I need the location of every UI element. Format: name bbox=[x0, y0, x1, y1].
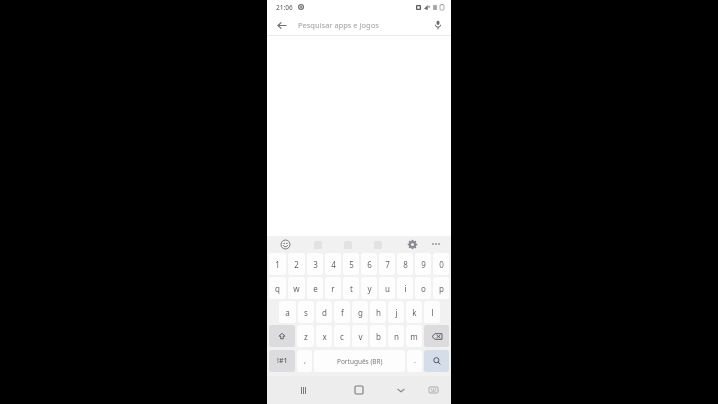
button[interactable]: Toolbar item 2 bbox=[341, 238, 354, 251]
button[interactable]: p bbox=[433, 277, 449, 299]
button[interactable]: s bbox=[298, 301, 314, 323]
button[interactable]: Backspace bbox=[424, 325, 449, 347]
button[interactable]: Voice search bbox=[429, 16, 447, 34]
button[interactable]: 4 bbox=[325, 253, 341, 275]
button[interactable]: 6 bbox=[361, 253, 377, 275]
button[interactable]: d bbox=[316, 301, 332, 323]
button[interactable]: k bbox=[406, 301, 422, 323]
button[interactable]: r bbox=[325, 277, 341, 299]
staticText: v bbox=[358, 331, 363, 342]
button[interactable]: 7 bbox=[379, 253, 395, 275]
button[interactable]: y bbox=[361, 277, 377, 299]
button[interactable]: e bbox=[307, 277, 323, 299]
button[interactable]: o bbox=[415, 277, 431, 299]
button[interactable]: v bbox=[352, 325, 368, 347]
button[interactable]: , bbox=[297, 350, 312, 372]
button[interactable]: Home bbox=[351, 382, 367, 398]
staticText: 8 bbox=[403, 259, 408, 270]
staticText: r bbox=[331, 283, 335, 294]
button[interactable]: Shift bbox=[269, 325, 295, 347]
staticText: q bbox=[275, 283, 280, 294]
staticText: u bbox=[385, 283, 390, 294]
button[interactable]: n bbox=[388, 325, 404, 347]
staticText: b bbox=[376, 331, 381, 342]
button[interactable]: Emoji bbox=[278, 237, 292, 251]
button[interactable]: Pesquisar apps e jogos bbox=[298, 15, 423, 35]
staticText: n bbox=[394, 331, 399, 342]
staticText: f bbox=[341, 307, 344, 318]
button[interactable]: l bbox=[424, 301, 440, 323]
staticText: , bbox=[304, 356, 306, 366]
button[interactable]: t bbox=[343, 277, 359, 299]
staticText: 0 bbox=[439, 259, 444, 270]
staticText: 6 bbox=[367, 259, 372, 270]
button[interactable]: Change keyboard bbox=[425, 382, 441, 398]
button[interactable]: h bbox=[370, 301, 386, 323]
staticText: 5 bbox=[349, 259, 354, 270]
button[interactable]: Hide keyboard bbox=[393, 382, 409, 398]
button[interactable]: b bbox=[370, 325, 386, 347]
button[interactable]: 3 bbox=[307, 253, 323, 275]
staticText: h bbox=[376, 307, 381, 318]
staticText: l bbox=[431, 307, 434, 318]
staticText: 3 bbox=[313, 259, 318, 270]
staticText: 21:06 bbox=[276, 3, 293, 12]
button[interactable]: Search bbox=[424, 350, 449, 372]
button[interactable]: 8 bbox=[397, 253, 413, 275]
button[interactable]: g bbox=[352, 301, 368, 323]
button[interactable]: Recent apps bbox=[295, 382, 311, 398]
staticText: g bbox=[358, 307, 363, 318]
button[interactable]: 0 bbox=[433, 253, 449, 275]
button[interactable]: 9 bbox=[415, 253, 431, 275]
staticText: m bbox=[410, 331, 418, 342]
button[interactable]: f bbox=[334, 301, 350, 323]
staticText: o bbox=[421, 283, 426, 294]
button[interactable]: !#1 bbox=[269, 350, 295, 372]
staticText: Português (BR) bbox=[337, 357, 383, 366]
button[interactable]: w bbox=[288, 277, 305, 299]
staticText: s bbox=[304, 307, 308, 318]
button[interactable]: u bbox=[379, 277, 395, 299]
button[interactable]: 1 bbox=[269, 253, 286, 275]
button[interactable]: i bbox=[397, 277, 413, 299]
staticText: x bbox=[322, 331, 327, 342]
button[interactable]: j bbox=[388, 301, 404, 323]
button[interactable]: Keyboard settings bbox=[405, 237, 419, 251]
staticText: d bbox=[322, 307, 327, 318]
button[interactable]: x bbox=[316, 325, 332, 347]
staticText: 7 bbox=[385, 259, 390, 270]
staticText: 4 bbox=[331, 259, 336, 270]
button[interactable]: z bbox=[297, 325, 314, 347]
button[interactable]: . bbox=[407, 350, 422, 372]
staticText: j bbox=[395, 307, 398, 318]
button[interactable]: More options bbox=[429, 237, 443, 251]
button[interactable]: Back bbox=[272, 16, 290, 34]
staticText: !#1 bbox=[277, 356, 288, 366]
button[interactable]: c bbox=[334, 325, 350, 347]
button[interactable]: a bbox=[279, 301, 296, 323]
staticText: Pesquisar apps e jogos bbox=[298, 20, 379, 30]
staticText: p bbox=[439, 283, 444, 294]
button[interactable]: Português (BR) bbox=[314, 350, 405, 372]
staticText: c bbox=[340, 331, 344, 342]
staticText: 9 bbox=[421, 259, 426, 270]
staticText: k bbox=[412, 307, 417, 318]
staticText: y bbox=[367, 283, 372, 294]
staticText: 2 bbox=[294, 259, 299, 270]
button[interactable]: m bbox=[406, 325, 422, 347]
button[interactable]: q bbox=[269, 277, 286, 299]
button[interactable]: Toolbar item 1 bbox=[311, 238, 324, 251]
staticText: a bbox=[285, 307, 290, 318]
button[interactable]: 5 bbox=[343, 253, 359, 275]
staticText: w bbox=[293, 283, 300, 294]
staticText: t bbox=[350, 283, 353, 294]
button[interactable]: Toolbar item 3 bbox=[371, 238, 384, 251]
staticText: 1 bbox=[275, 259, 280, 270]
button[interactable]: 2 bbox=[288, 253, 305, 275]
staticText: . bbox=[414, 356, 416, 366]
staticText: e bbox=[313, 283, 318, 294]
staticText: i bbox=[404, 283, 407, 294]
staticText: z bbox=[304, 331, 308, 342]
